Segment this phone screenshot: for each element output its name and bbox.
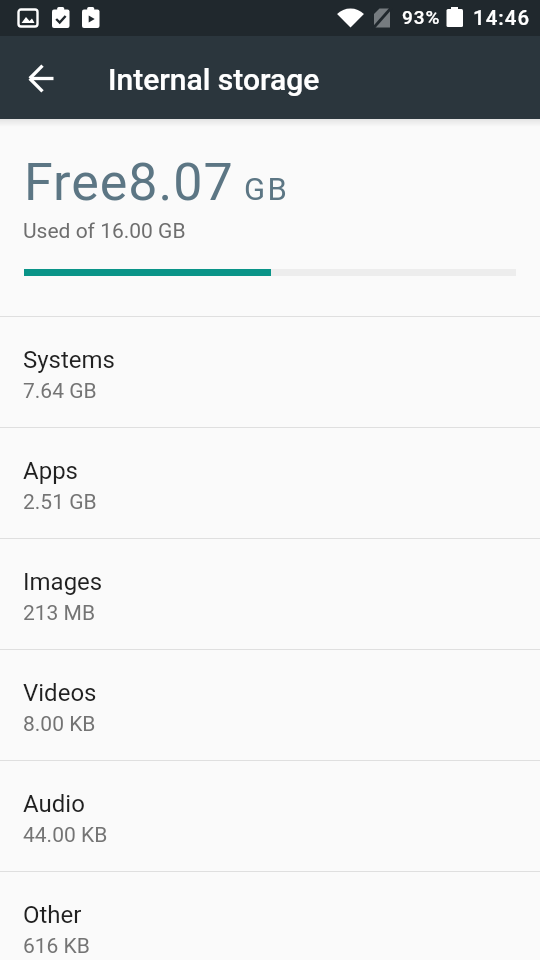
staticText: Internal storage — [108, 62, 320, 97]
staticText: Used of 16.00 GB — [23, 219, 186, 244]
staticText: Audio — [23, 790, 85, 818]
button[interactable]: Audio — [0, 761, 540, 871]
staticText: 44.00 KB — [23, 823, 108, 848]
button[interactable]: Systems — [0, 317, 540, 427]
button[interactable]: Other — [0, 872, 540, 960]
staticText: Free8.07 GB — [24, 152, 290, 213]
staticText: Systems — [23, 346, 116, 374]
staticText: 2.51 GB — [23, 490, 97, 515]
staticText: Videos — [23, 679, 97, 707]
button[interactable]: Videos — [0, 650, 540, 760]
staticText: 93% — [402, 6, 441, 28]
staticText: 14:46 — [473, 6, 531, 30]
staticText: Images — [23, 568, 103, 596]
button[interactable]: Images — [0, 539, 540, 649]
button[interactable] — [0, 36, 84, 119]
staticText: 616 KB — [23, 934, 90, 959]
staticText: Other — [23, 901, 82, 929]
staticText: 213 MB — [23, 601, 96, 626]
staticText: 8.00 KB — [23, 712, 96, 737]
staticText: Apps — [23, 457, 78, 485]
button[interactable]: Apps — [0, 428, 540, 538]
staticText: 7.64 GB — [23, 379, 97, 404]
